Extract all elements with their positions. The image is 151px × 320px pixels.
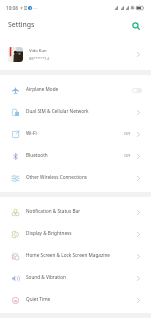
staticText: Home Screen & Lock Screen Magazine [26,252,110,258]
button[interactable]: Wi-Fi [0,122,151,144]
staticText: Dual SIM & Cellular Network [26,108,89,114]
staticText: Vido Kun [29,48,47,54]
button[interactable]: Home Screen & Lock Screen Magazine [0,244,151,266]
staticText: Wi-Fi [26,130,37,136]
staticText: Display & Brightness [26,230,72,236]
button[interactable]: Other Wireless Connections [0,166,151,188]
button[interactable]: Bluetooth [0,144,151,166]
staticText: Off [124,153,131,159]
button[interactable]: Dual SIM & Cellular Network [0,100,151,122]
staticText: Other Wireless Connections [26,174,88,180]
button[interactable]: Search [129,19,142,32]
staticText: Quiet Time [26,296,51,302]
staticText: Bluetooth [26,152,48,158]
staticText: 88*****14 [29,56,50,61]
button[interactable]: Display & Brightness [0,222,151,244]
staticText: Sound & Vibration [26,274,66,280]
staticText: 10:08 [6,5,18,11]
button[interactable]: Sound & Vibration [0,266,151,288]
button[interactable]: Quiet Time [0,288,151,310]
button[interactable]: Notification & Status Bar [0,200,151,222]
button[interactable]: Vido Kun [0,38,151,70]
staticText: Settings [8,20,35,29]
staticText: Off [124,131,131,137]
button[interactable]: Airplane Mode [0,78,151,100]
staticText: Airplane Mode [26,86,59,92]
staticText: Notification & Status Bar [26,208,81,214]
